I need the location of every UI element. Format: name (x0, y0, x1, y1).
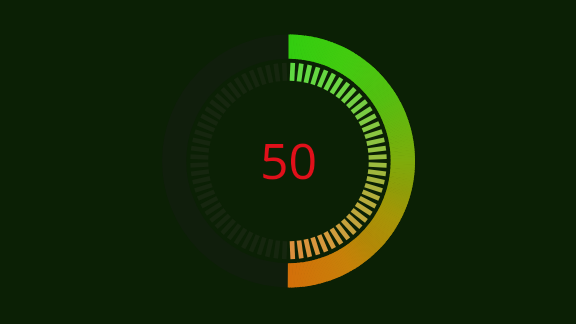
staticText: 50 (260, 126, 318, 194)
button[interactable]: 50 (0, 0, 576, 324)
